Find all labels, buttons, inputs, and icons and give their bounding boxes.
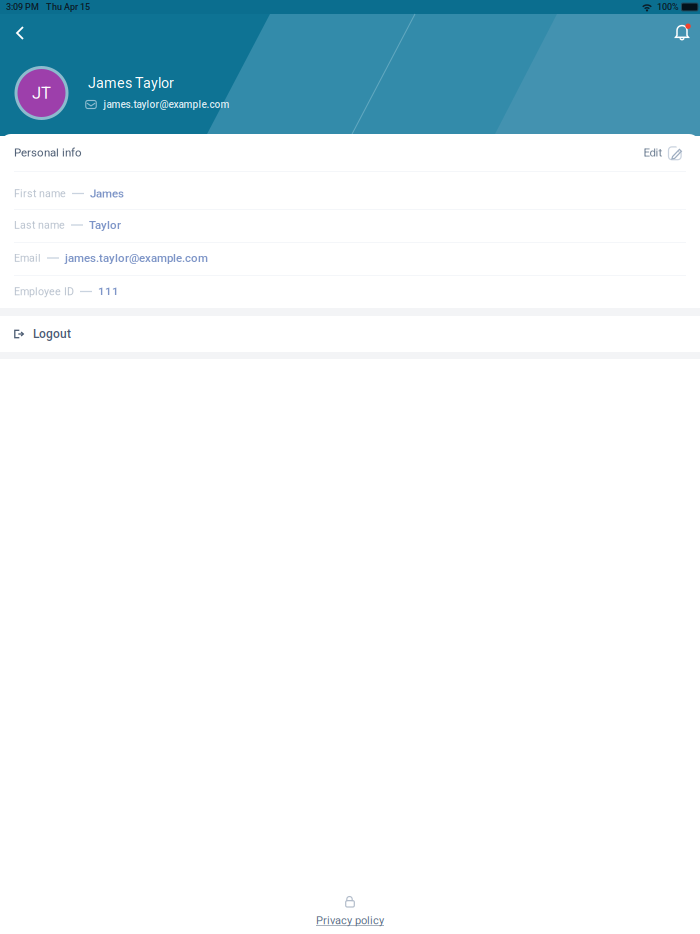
staticText: 111 <box>98 285 119 298</box>
staticText: james.taylor@example.com <box>65 251 208 265</box>
button[interactable]: Edit <box>643 145 686 160</box>
button[interactable]: Logout <box>0 316 700 352</box>
staticText: First name <box>14 187 66 200</box>
button[interactable]: Back <box>2 14 37 52</box>
staticText: james.taylor@example.com <box>103 99 229 110</box>
staticText: 100% <box>657 2 679 12</box>
staticText: Logout <box>33 327 71 341</box>
staticText: Edit <box>643 146 662 159</box>
staticText: Email <box>14 252 41 264</box>
staticText: 3:09 PM <box>6 2 39 12</box>
staticText: Employee ID <box>14 285 74 298</box>
button[interactable]: Privacy policy <box>316 896 384 934</box>
staticText: James Taylor <box>88 75 174 91</box>
staticText: Personal info <box>14 146 82 159</box>
staticText: Privacy policy <box>316 914 384 927</box>
staticText: Thu Apr 15 <box>46 2 90 12</box>
staticText: Taylor <box>89 218 121 232</box>
button[interactable]: Notifications <box>663 13 700 52</box>
staticText: James <box>90 187 124 200</box>
staticText: Last name <box>14 219 65 231</box>
staticText: JT <box>32 83 51 103</box>
